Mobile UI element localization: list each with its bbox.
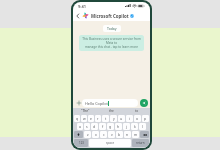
button[interactable]: t bbox=[102, 115, 109, 122]
staticText: s bbox=[86, 124, 88, 129]
staticText: return bbox=[136, 141, 145, 145]
button[interactable]: Hello Copilot bbox=[82, 99, 138, 107]
staticText: w bbox=[83, 116, 86, 121]
staticText: h bbox=[117, 124, 120, 129]
staticText: z bbox=[87, 132, 89, 137]
button[interactable]: s bbox=[84, 123, 90, 130]
staticText: t bbox=[105, 116, 107, 121]
staticText: e bbox=[90, 116, 92, 121]
staticText: Today bbox=[107, 26, 117, 31]
staticText: to bbox=[135, 109, 139, 113]
button[interactable]: m bbox=[132, 131, 139, 138]
staticText: 9:41 bbox=[78, 4, 86, 9]
staticText: "The" bbox=[81, 109, 90, 113]
staticText: the bbox=[109, 109, 114, 113]
staticText: a bbox=[79, 124, 81, 129]
button[interactable]: "The" bbox=[73, 108, 98, 114]
staticText: x bbox=[95, 132, 97, 137]
staticText: 123 bbox=[79, 141, 84, 145]
button[interactable]: Key bbox=[74, 131, 83, 138]
staticText: r bbox=[97, 116, 99, 121]
staticText: v bbox=[111, 132, 113, 137]
button[interactable]: a bbox=[77, 123, 83, 130]
button[interactable]: c bbox=[100, 131, 107, 138]
staticText: d bbox=[93, 124, 96, 129]
staticText: i bbox=[129, 116, 130, 121]
button[interactable]: x bbox=[92, 131, 99, 138]
button[interactable]: f bbox=[99, 123, 106, 130]
button[interactable]: n bbox=[124, 131, 131, 138]
staticText: k bbox=[134, 124, 136, 129]
button[interactable]: h bbox=[115, 123, 122, 130]
staticText: l bbox=[142, 124, 143, 129]
staticText: p bbox=[144, 116, 147, 121]
button[interactable]: p bbox=[142, 115, 149, 122]
staticText: m bbox=[134, 132, 138, 137]
button[interactable]: v bbox=[108, 131, 115, 138]
button[interactable]: e bbox=[88, 115, 94, 122]
button[interactable]: o bbox=[134, 115, 141, 122]
button[interactable]: the bbox=[98, 108, 124, 114]
staticText: y bbox=[113, 116, 115, 121]
button[interactable]: z bbox=[84, 131, 91, 138]
staticText: f bbox=[102, 124, 104, 129]
staticText: Microsoft Copilot bbox=[91, 13, 129, 19]
button[interactable]: g bbox=[107, 123, 114, 130]
button[interactable]: Back bbox=[73, 11, 82, 20]
staticText: o bbox=[136, 116, 139, 121]
staticText: g bbox=[109, 124, 112, 129]
staticText: Hello Copilot bbox=[85, 101, 108, 106]
button[interactable]: l bbox=[139, 123, 146, 130]
button[interactable]: return bbox=[132, 139, 149, 147]
button[interactable]: b bbox=[116, 131, 123, 138]
button[interactable]: i bbox=[126, 115, 133, 122]
button[interactable]: r bbox=[95, 115, 101, 122]
staticText: n bbox=[126, 132, 129, 137]
button[interactable]: 123 bbox=[74, 139, 88, 147]
staticText: q bbox=[76, 116, 79, 121]
staticText: c bbox=[103, 132, 105, 137]
button[interactable]: Send bbox=[140, 99, 148, 107]
staticText: space bbox=[106, 141, 115, 145]
button[interactable]: j bbox=[123, 123, 130, 130]
button[interactable]: Key bbox=[140, 131, 149, 138]
button[interactable]: u bbox=[118, 115, 125, 122]
button[interactable]: to bbox=[124, 108, 150, 114]
staticText: u bbox=[120, 116, 123, 121]
button[interactable]: y bbox=[110, 115, 117, 122]
staticText: b bbox=[118, 132, 121, 137]
staticText: This Business uses a secure service from… bbox=[82, 37, 141, 49]
button[interactable]: d bbox=[91, 123, 98, 130]
button[interactable]: space bbox=[89, 139, 131, 147]
button[interactable]: k bbox=[131, 123, 138, 130]
button[interactable]: Attach bbox=[75, 99, 82, 106]
button[interactable]: w bbox=[81, 115, 87, 122]
staticText: j bbox=[126, 124, 127, 129]
button[interactable]: q bbox=[74, 115, 80, 122]
